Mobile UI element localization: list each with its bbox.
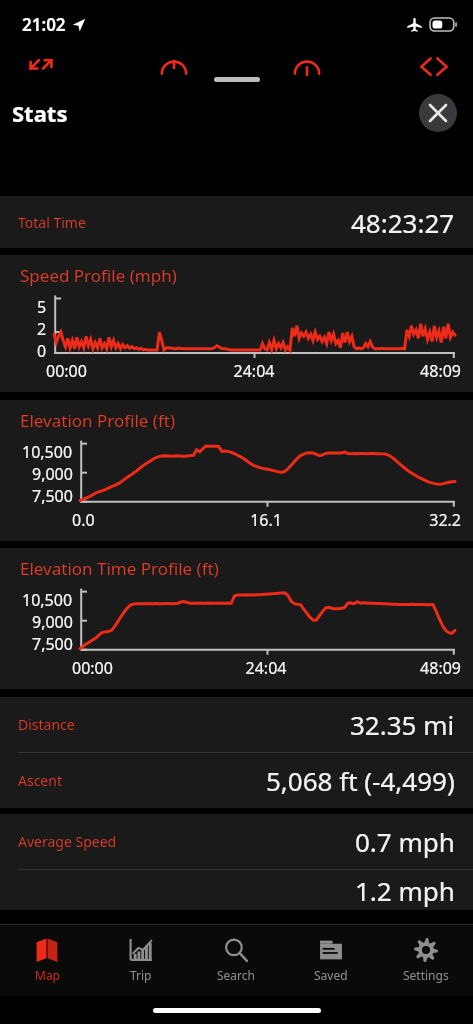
button[interactable]: Expand: [28, 55, 54, 81]
staticText: 5: [37, 296, 47, 318]
staticText: 0.0: [72, 509, 201, 531]
staticText: 24:04: [201, 657, 331, 679]
staticText: 10,500: [22, 441, 73, 463]
staticText: 21:02: [22, 13, 66, 36]
button[interactable]: Map: [0, 924, 94, 996]
staticText: 00:00: [46, 360, 185, 382]
staticText: 00:00: [72, 657, 201, 679]
button[interactable]: Settings: [378, 924, 473, 996]
staticText: 9,000: [32, 611, 73, 633]
button[interactable]: Distance: [0, 697, 473, 752]
staticText: 32.35 mi: [350, 707, 455, 742]
staticText: 48:23:27: [351, 205, 455, 240]
button[interactable]: Search: [188, 924, 283, 996]
button[interactable]: Average Speed: [0, 814, 473, 869]
staticText: 10,500: [22, 589, 73, 611]
button[interactable]: Gauge: [158, 52, 190, 84]
staticText: Ascent: [18, 771, 62, 790]
staticText: Search: [217, 967, 255, 983]
staticText: Total Time: [18, 213, 86, 232]
staticText: Elevation Time Profile (ft): [20, 557, 219, 580]
button[interactable]: 1.2 mph: [0, 870, 473, 910]
button[interactable]: Collapse: [417, 51, 451, 85]
button[interactable]: Trip: [94, 924, 188, 996]
staticText: 0: [37, 340, 47, 358]
staticText: 7,500: [32, 633, 73, 655]
staticText: 48:09: [331, 657, 461, 679]
staticText: 32.2: [331, 509, 461, 531]
button[interactable]: Saved: [283, 924, 378, 996]
staticText: Speed Profile (mph): [20, 264, 177, 287]
staticText: 0.7 mph: [355, 824, 455, 859]
staticText: 9,000: [32, 463, 73, 485]
staticText: Map: [35, 967, 60, 983]
staticText: Distance: [18, 715, 75, 734]
staticText: 48:09: [323, 360, 461, 382]
button[interactable]: Ascent: [0, 753, 473, 808]
staticText: Settings: [403, 967, 449, 983]
staticText: 16.1: [201, 509, 331, 531]
staticText: Stats: [12, 98, 68, 128]
staticText: Saved: [314, 967, 348, 983]
staticText: 1.2 mph: [355, 873, 455, 908]
staticText: 2: [37, 318, 47, 340]
button[interactable]: Close: [419, 94, 457, 132]
staticText: Elevation Profile (ft): [20, 409, 176, 432]
staticText: 5,068 ft (-4,499): [266, 763, 455, 798]
button[interactable]: Total Time: [0, 196, 473, 248]
staticText: 7,500: [32, 485, 73, 507]
staticText: 24:04: [185, 360, 323, 382]
staticText: Trip: [130, 967, 152, 983]
staticText: Average Speed: [18, 832, 117, 851]
button[interactable]: Speedometer: [291, 52, 323, 84]
